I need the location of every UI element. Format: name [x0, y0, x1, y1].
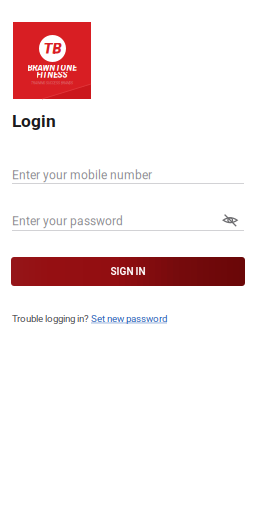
- button[interactable]: Show password: [220, 210, 240, 230]
- button[interactable]: SIGN IN: [11, 257, 245, 286]
- staticText: Trouble logging in?: [12, 313, 91, 324]
- staticText: Enter your mobile number: [12, 168, 152, 182]
- staticText: Enter your password: [12, 214, 123, 228]
- staticText: Login: [12, 111, 56, 131]
- staticText: SIGN IN: [110, 266, 145, 277]
- button[interactable]: Set new password: [91, 313, 167, 324]
- staticText: TRAINING SUCCESS BRANDS: [31, 81, 73, 85]
- staticText: BRAWNTONE: [27, 63, 76, 73]
- staticText: Set new password: [91, 313, 167, 324]
- staticText: TB: [43, 40, 61, 57]
- staticText: FITNESS: [36, 70, 67, 80]
